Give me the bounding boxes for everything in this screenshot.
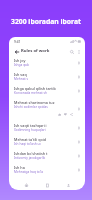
- button[interactable]: More options: [75, 48, 82, 55]
- button[interactable]: Like: [57, 112, 62, 117]
- staticText: Ish vaq: [14, 72, 27, 77]
- button[interactable]: Mehnat shartnoma tuz: [9, 97, 85, 120]
- staticText: Ish haqi to'lash uc: [14, 142, 41, 146]
- button[interactable]: Saved: [43, 181, 51, 189]
- staticText: Rules of work: [21, 48, 50, 54]
- staticText: Mehnat ta'tili qoid: [14, 137, 47, 142]
- staticText: Korxonada mehnat sh: [14, 91, 48, 95]
- button[interactable]: Ish vaq: [9, 69, 85, 83]
- button[interactable]: Home: [22, 181, 30, 189]
- button[interactable]: Dislike: [63, 112, 68, 117]
- staticText: Ishchi xodimlar qoidas: [14, 105, 48, 109]
- button[interactable]: Ish ha: [9, 162, 85, 176]
- button[interactable]: Search: [68, 48, 75, 55]
- button[interactable]: Bookmark: [76, 106, 81, 111]
- button[interactable]: Ish vaqti tashqari i: [9, 120, 85, 134]
- button[interactable]: Bookmark: [76, 139, 81, 144]
- button[interactable]: Ishga qabul qilish tartib: [9, 83, 85, 97]
- staticText: Mehnat shartnoma tuz: [14, 100, 55, 105]
- staticText: Ishga qabul qilish tartib: [14, 86, 56, 91]
- staticText: Mehnatga haq to'la: [14, 170, 44, 174]
- button[interactable]: Back: [13, 48, 20, 55]
- staticText: Ishga qab: [14, 63, 29, 67]
- button[interactable]: Profile: [64, 181, 72, 189]
- staticText: Mehnat s: [14, 77, 28, 81]
- staticText: Ish ha: [14, 165, 25, 170]
- button[interactable]: Bookmark: [76, 74, 81, 79]
- staticText: Ish joy: [14, 58, 26, 63]
- button[interactable]: Bookmark: [76, 60, 81, 65]
- staticText: Ishdan bo'shatish t: [14, 151, 48, 156]
- staticText: Ish vaqti tashqari i: [14, 123, 47, 128]
- staticText: Xodimning huquqlari: [14, 128, 46, 132]
- button[interactable]: Ishdan bo'shatish t: [9, 148, 85, 162]
- button[interactable]: Bookmark: [76, 153, 81, 158]
- button[interactable]: Share: [69, 112, 74, 117]
- button[interactable]: Bookmark: [76, 167, 81, 172]
- staticText: 3200 iboradan iborat: [0, 17, 92, 26]
- staticText: Intizomiy javobgarlik: [14, 156, 46, 160]
- button[interactable]: Mehnat ta'tili qoid: [9, 134, 85, 148]
- button[interactable]: Bookmark: [76, 88, 81, 93]
- staticText: 9:41: [14, 40, 21, 44]
- button[interactable]: Bookmark: [76, 125, 81, 130]
- button[interactable]: Ish joy: [9, 55, 85, 69]
